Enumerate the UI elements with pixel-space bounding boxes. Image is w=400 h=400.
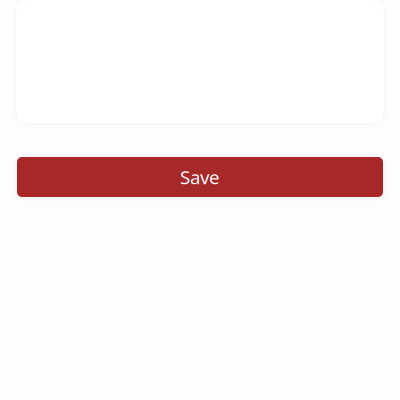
staticText: Save — [180, 165, 220, 189]
button[interactable]: Save — [17, 157, 383, 197]
